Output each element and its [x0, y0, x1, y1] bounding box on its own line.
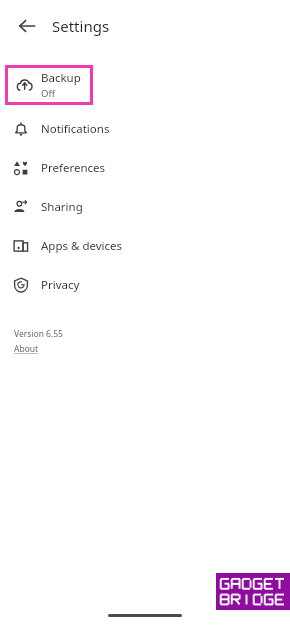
- staticText: Notifications: [41, 121, 110, 137]
- staticText: Sharing: [41, 199, 83, 215]
- staticText: About: [14, 343, 39, 355]
- staticText: Backup: [41, 70, 81, 86]
- button[interactable]: Sharing: [0, 189, 290, 224]
- button[interactable]: About: [14, 343, 39, 355]
- staticText: Settings: [52, 16, 110, 36]
- button[interactable]: Notifications: [0, 111, 290, 146]
- button[interactable]: Apps & devices: [0, 228, 290, 263]
- button[interactable]: Backup: [8, 68, 90, 102]
- button[interactable]: Preferences: [0, 150, 290, 185]
- staticText: Privacy: [41, 277, 80, 293]
- staticText: Apps & devices: [41, 238, 123, 254]
- staticText: Preferences: [41, 160, 106, 176]
- button[interactable]: Privacy: [0, 267, 290, 302]
- button[interactable]: Back: [10, 9, 44, 43]
- staticText: Version 6.55: [14, 328, 63, 340]
- staticText: Off: [41, 87, 55, 100]
